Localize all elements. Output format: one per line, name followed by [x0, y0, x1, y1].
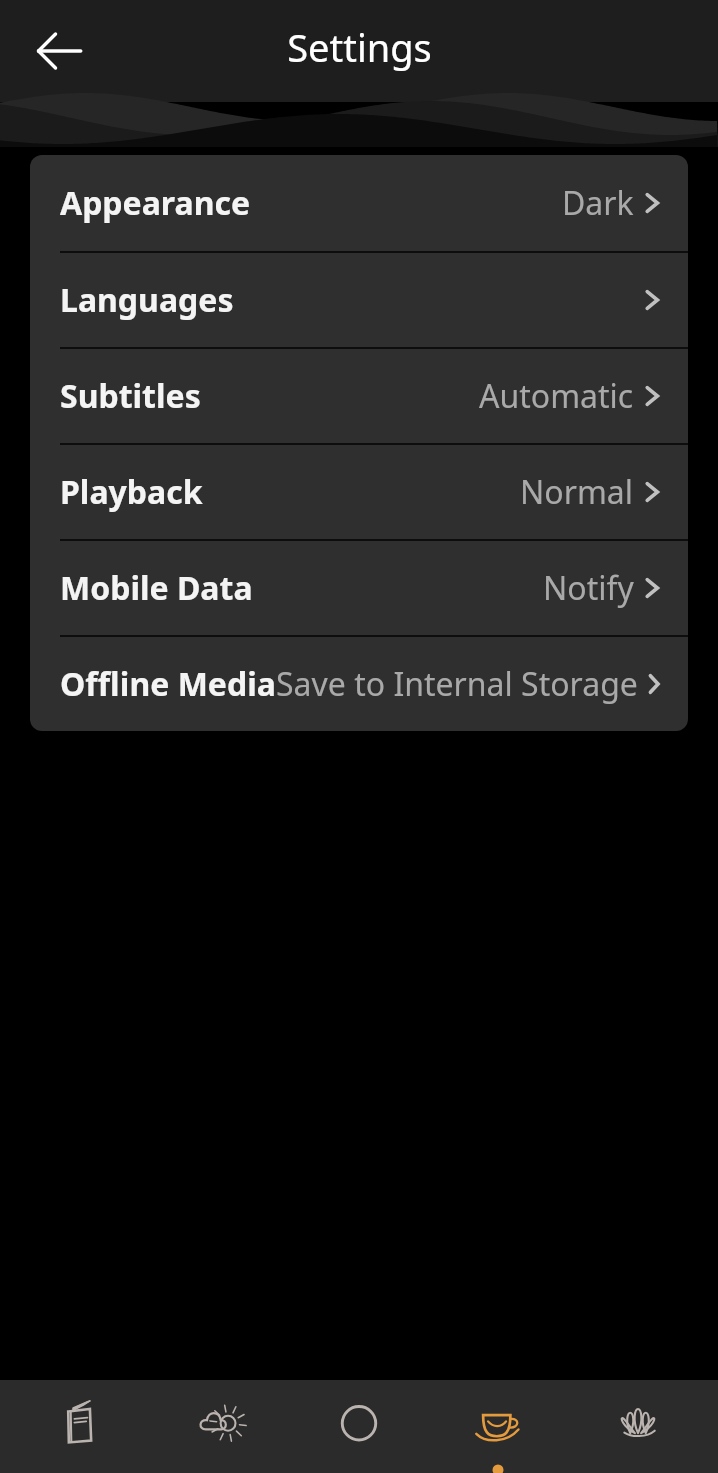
button[interactable]: Subtitles: [30, 347, 688, 443]
staticText: Automatic: [479, 374, 634, 418]
button[interactable]: Mobile Data: [30, 539, 688, 635]
button[interactable]: Offline Media: [30, 635, 688, 731]
staticText: Settings: [287, 21, 432, 73]
button[interactable]: Weather: [161, 1380, 279, 1473]
button[interactable]: Appearance: [30, 155, 688, 251]
staticText: Save to Internal Storage: [276, 662, 638, 706]
button[interactable]: Tea: [439, 1380, 557, 1473]
staticText: Appearance: [60, 181, 251, 225]
staticText: Playback: [60, 470, 203, 514]
staticText: Subtitles: [60, 374, 201, 418]
staticText: Dark: [562, 181, 634, 225]
staticText: Notify: [543, 566, 634, 610]
button[interactable]: Library: [21, 1380, 139, 1473]
button[interactable]: Meditate: [579, 1380, 697, 1473]
staticText: Offline Media: [60, 662, 276, 706]
button[interactable]: Playback: [30, 443, 688, 539]
button[interactable]: Breathe: [300, 1380, 418, 1473]
staticText: Normal: [520, 470, 634, 514]
button[interactable]: Languages: [30, 251, 688, 347]
staticText: Mobile Data: [60, 566, 253, 610]
staticText: Languages: [60, 278, 234, 322]
button[interactable]: Back: [26, 18, 92, 84]
